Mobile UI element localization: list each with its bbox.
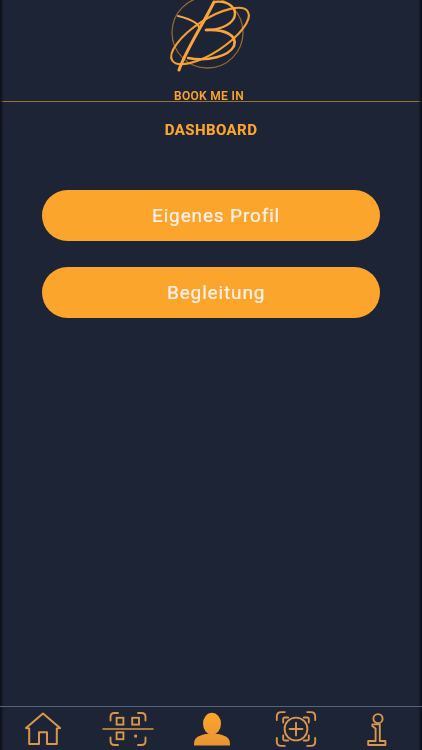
button[interactable]: Info [338, 707, 422, 750]
button[interactable]: Scan and add [254, 707, 338, 750]
staticText: Begleitung [167, 281, 266, 303]
staticText: DASHBOARD [0, 121, 422, 139]
staticText: Eigenes Profil [152, 204, 281, 226]
staticText: BOOK ME IN [174, 89, 245, 103]
button[interactable]: Home [0, 707, 85, 750]
button[interactable]: Begleitung [42, 267, 380, 318]
button[interactable]: QR code [85, 707, 170, 750]
button[interactable]: Eigenes Profil [42, 190, 380, 241]
button[interactable]: Profile [170, 707, 254, 750]
